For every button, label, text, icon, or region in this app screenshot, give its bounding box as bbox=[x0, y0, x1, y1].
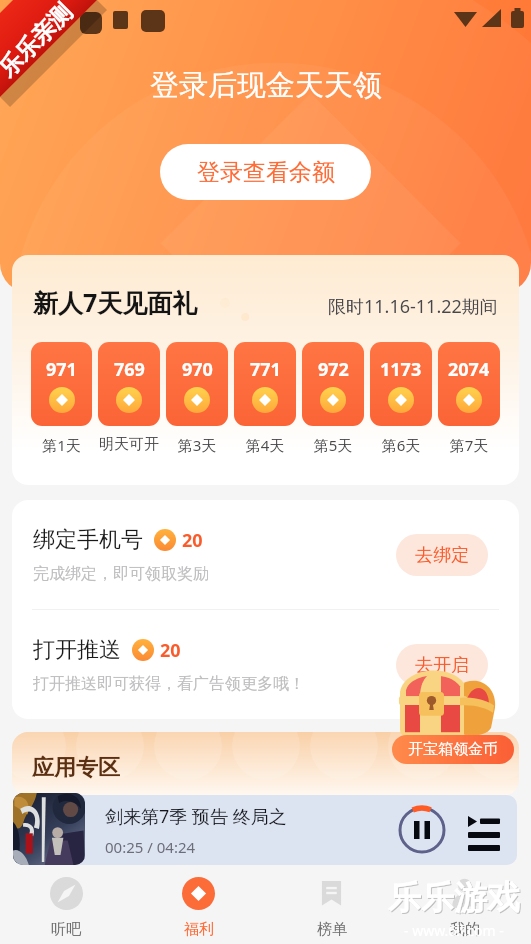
staticText: 登录查看余额 bbox=[197, 158, 335, 187]
staticText: 去绑定 bbox=[415, 544, 469, 567]
staticText: 新人7天见面礼 bbox=[33, 285, 198, 319]
staticText: 771 bbox=[250, 357, 281, 382]
staticText: 971 bbox=[46, 357, 77, 382]
button[interactable]: 970 bbox=[166, 342, 228, 455]
staticText: 剑来第7季 预告 终局之 bbox=[105, 804, 287, 829]
button[interactable]: 绑定手机号 bbox=[12, 500, 519, 609]
staticText: 1173 bbox=[380, 357, 422, 382]
staticText: 20 bbox=[182, 528, 203, 553]
staticText: 应用专区 bbox=[32, 754, 120, 782]
staticText: 972 bbox=[318, 357, 349, 382]
button[interactable]: 福利 bbox=[132, 865, 265, 944]
staticText: 第3天 bbox=[166, 435, 228, 455]
button[interactable]: 登录查看余额 bbox=[160, 144, 371, 200]
button[interactable]: Pause bbox=[396, 804, 448, 856]
staticText: 乐乐游戏 bbox=[389, 878, 521, 920]
button[interactable]: 972 bbox=[302, 342, 364, 455]
staticText: 我的 bbox=[450, 920, 480, 939]
staticText: 开宝箱领金币 bbox=[408, 740, 498, 759]
staticText: 第7天 bbox=[438, 435, 500, 455]
button[interactable]: 榜单 bbox=[265, 865, 398, 944]
button[interactable]: 去绑定 bbox=[396, 534, 488, 576]
staticText: 第1天 bbox=[31, 435, 92, 455]
staticText: 限时11.16-11.22期间 bbox=[328, 294, 498, 319]
staticText: 登录后现金天天领 bbox=[150, 67, 382, 104]
staticText: 970 bbox=[182, 357, 213, 382]
button[interactable]: 开宝箱领金币 bbox=[392, 735, 514, 764]
staticText: 769 bbox=[114, 357, 145, 382]
staticText: 榜单 bbox=[317, 920, 347, 939]
staticText: 00:25 / 04:24 bbox=[105, 837, 196, 857]
button[interactable]: Playlist bbox=[462, 808, 506, 852]
staticText: 打开推送 bbox=[33, 636, 121, 664]
staticText: 第4天 bbox=[234, 435, 296, 455]
staticText: 20 bbox=[160, 638, 181, 663]
staticText: 乐乐亲测 bbox=[0, 0, 78, 83]
staticText: 乐乐游戏 bbox=[388, 877, 520, 919]
button[interactable]: 1173 bbox=[370, 342, 432, 455]
button[interactable]: 听吧 bbox=[0, 865, 132, 944]
staticText: 打开推送即可获得，看广告领更多哦！ bbox=[33, 674, 305, 694]
button[interactable]: 771 bbox=[234, 342, 296, 455]
staticText: 明天可开 bbox=[98, 435, 160, 454]
staticText: - www.6ll.com - bbox=[404, 921, 504, 940]
staticText: 第6天 bbox=[370, 435, 432, 455]
button[interactable]: 去开启 bbox=[396, 644, 488, 686]
staticText: 绑定手机号 bbox=[33, 526, 143, 554]
button[interactable]: 971 bbox=[31, 342, 92, 455]
button[interactable]: 打开推送 bbox=[12, 610, 519, 719]
staticText: 听吧 bbox=[51, 920, 81, 939]
staticText: 第5天 bbox=[302, 435, 364, 455]
staticText: 福利 bbox=[184, 920, 214, 939]
staticText: 完成绑定，即可领取奖励 bbox=[33, 564, 209, 584]
staticText: 2074 bbox=[448, 357, 490, 382]
staticText: 去开启 bbox=[415, 654, 469, 677]
button[interactable]: 我的 bbox=[398, 865, 531, 944]
button[interactable]: 2074 bbox=[438, 342, 500, 455]
button[interactable]: 769 bbox=[98, 342, 160, 454]
